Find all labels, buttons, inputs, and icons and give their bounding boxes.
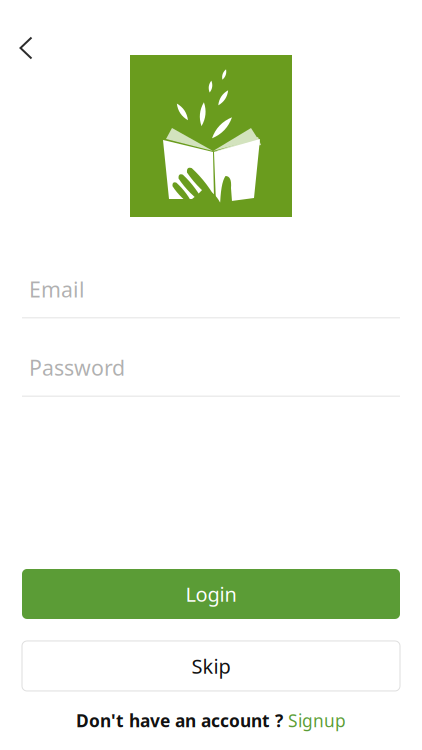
staticText: Password	[29, 353, 125, 382]
button[interactable]: Back	[4, 26, 48, 70]
staticText: Don't have an account ?	[76, 709, 288, 732]
button[interactable]: Skip	[22, 641, 400, 691]
staticText: Skip	[191, 653, 230, 679]
staticText: Signup	[288, 709, 346, 732]
staticText: Login	[185, 581, 236, 607]
staticText: Email	[29, 275, 85, 303]
button[interactable]: Login	[22, 569, 400, 619]
button[interactable]: Signup	[288, 709, 346, 732]
